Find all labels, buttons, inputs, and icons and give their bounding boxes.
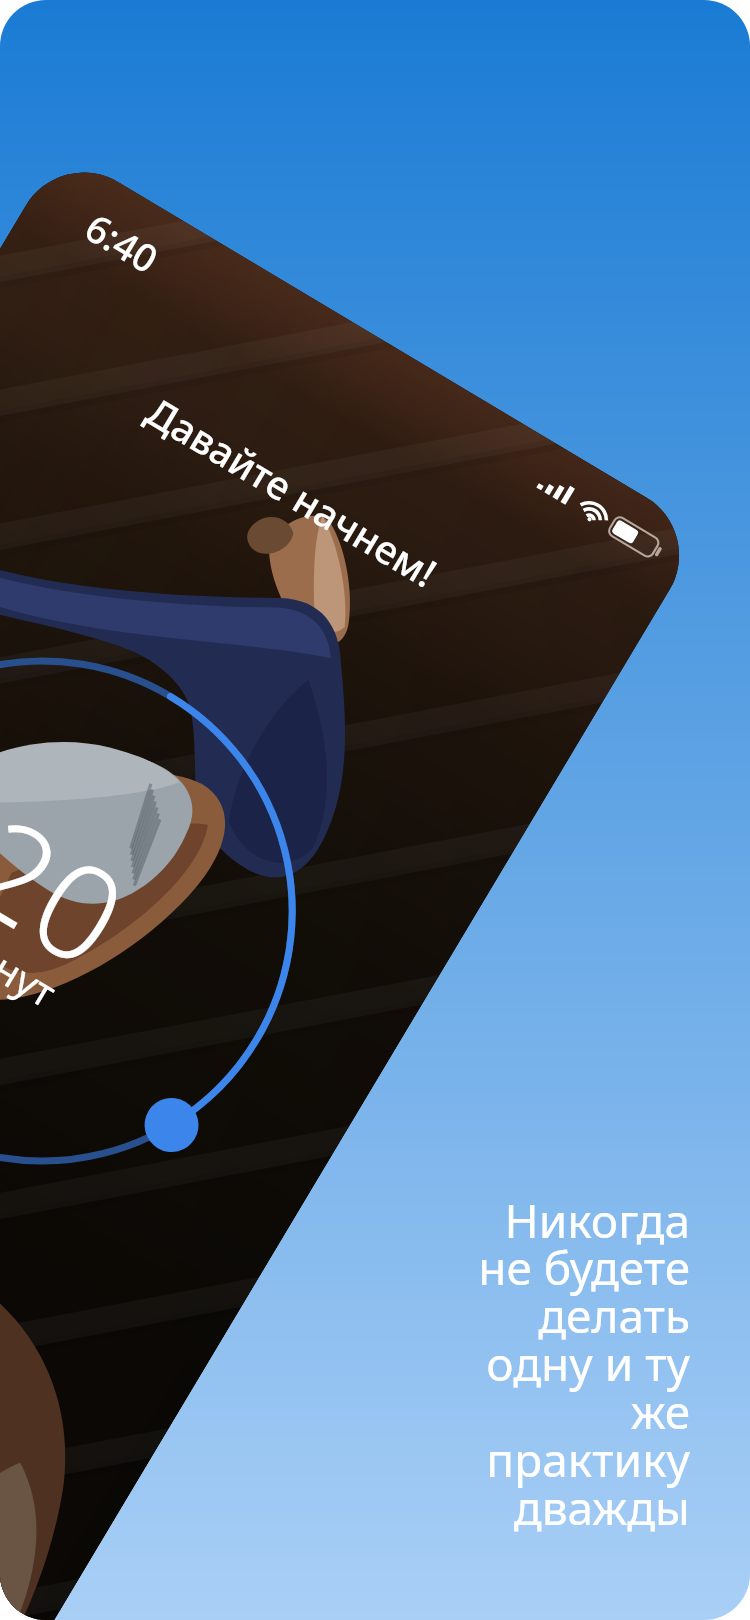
staticText: 20 bbox=[0, 774, 158, 1006]
other: Signal, Wi-Fi and battery status bbox=[533, 467, 670, 565]
staticText: Давайте начнем! bbox=[137, 384, 447, 598]
staticText: 6:40 bbox=[76, 201, 168, 284]
button[interactable]: 6:40 bbox=[0, 147, 704, 1620]
staticText: Никогда не будете делать одну и ту же пр… bbox=[478, 1189, 690, 1539]
staticText: минут bbox=[0, 911, 67, 1019]
